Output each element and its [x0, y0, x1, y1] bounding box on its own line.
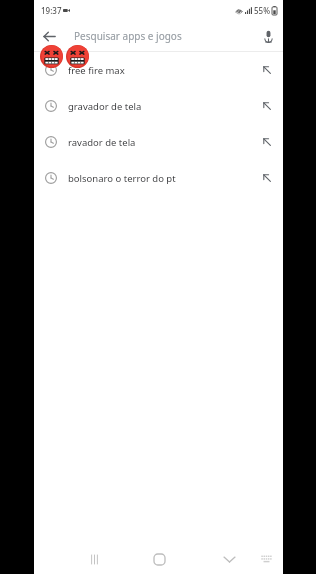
- staticText: ravador de tela: [68, 136, 136, 149]
- button[interactable]: ravador de tela: [34, 124, 283, 160]
- button[interactable]: Fill in ravador de tela: [251, 126, 283, 158]
- button[interactable]: Fill in gravador de tela: [251, 90, 283, 122]
- button[interactable]: free fire max: [34, 52, 283, 88]
- button[interactable]: Fill in bolsonaro o terror do pt: [251, 162, 283, 194]
- button[interactable]: Hide keyboard: [217, 547, 241, 571]
- staticText: free fire max: [68, 64, 125, 77]
- button[interactable]: Change keyboard: [255, 548, 277, 570]
- button[interactable]: gravador de tela: [34, 88, 283, 124]
- staticText: 55%: [254, 5, 270, 16]
- staticText: bolsonaro o terror do pt: [68, 172, 176, 185]
- button[interactable]: bolsonaro o terror do pt: [34, 160, 283, 196]
- staticText: gravador de tela: [68, 100, 142, 113]
- button[interactable]: Back: [34, 21, 64, 51]
- button[interactable]: Recents: [82, 547, 106, 571]
- button[interactable]: Pesquisar apps e jogos: [64, 20, 253, 51]
- button[interactable]: Voice search: [253, 21, 283, 51]
- button[interactable]: Fill in free fire max: [251, 54, 283, 86]
- staticText: 19:37: [41, 5, 62, 16]
- staticText: Pesquisar apps e jogos: [74, 29, 182, 43]
- button[interactable]: Home: [146, 546, 172, 572]
